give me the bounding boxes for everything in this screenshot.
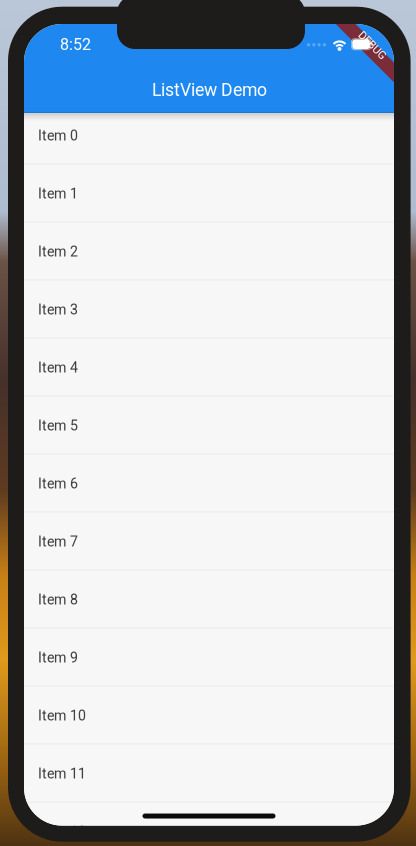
staticText: Item 7 bbox=[38, 533, 78, 550]
button[interactable]: Item 4 bbox=[24, 339, 394, 397]
staticText: Item 5 bbox=[38, 417, 78, 434]
staticText: Item 8 bbox=[38, 591, 78, 608]
staticText: ListView Demo bbox=[152, 80, 267, 100]
staticText: Item 0 bbox=[38, 127, 78, 144]
staticText: Item 9 bbox=[38, 649, 78, 666]
staticText: Item 12 bbox=[38, 823, 86, 840]
button[interactable]: Item 5 bbox=[24, 397, 394, 455]
button[interactable]: Item 9 bbox=[24, 629, 394, 687]
staticText: 8:52 bbox=[60, 35, 91, 54]
staticText: Item 4 bbox=[38, 359, 78, 376]
staticText: Item 11 bbox=[38, 765, 86, 782]
staticText: Item 3 bbox=[38, 301, 78, 318]
button[interactable]: Item 10 bbox=[24, 687, 394, 745]
button[interactable]: Item 6 bbox=[24, 455, 394, 513]
button[interactable]: Item 7 bbox=[24, 513, 394, 571]
button[interactable]: Item 0 bbox=[24, 107, 394, 165]
button[interactable]: Item 2 bbox=[24, 223, 394, 281]
staticText: Item 2 bbox=[38, 243, 78, 260]
button[interactable]: Item 1 bbox=[24, 165, 394, 223]
button[interactable]: Item 12 bbox=[24, 803, 394, 846]
staticText: Item 10 bbox=[38, 707, 86, 724]
staticText: Item 1 bbox=[38, 185, 78, 202]
staticText: Item 6 bbox=[38, 475, 78, 492]
button[interactable]: Item 8 bbox=[24, 571, 394, 629]
staticText: DEBUG bbox=[355, 39, 390, 52]
button[interactable]: Item 11 bbox=[24, 745, 394, 803]
button[interactable]: Item 3 bbox=[24, 281, 394, 339]
